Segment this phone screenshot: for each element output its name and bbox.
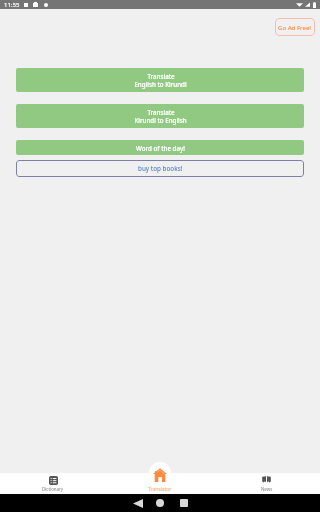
button[interactable]: Translate (16, 104, 304, 128)
staticText: Dictionary (42, 486, 64, 492)
button[interactable]: Word of the day! (16, 140, 304, 155)
staticText: News (261, 486, 273, 492)
button[interactable]: Dictionary (0, 473, 106, 494)
staticText: Go Ad Free! (278, 23, 312, 31)
staticText: 11:55 (4, 1, 20, 9)
staticText: Translator (148, 486, 172, 493)
staticText: English to Kirundi (134, 80, 187, 88)
staticText: Translate (147, 108, 175, 116)
button[interactable]: Translate (16, 68, 304, 92)
staticText: Word of the day! (136, 144, 185, 152)
button[interactable]: buy top books! (16, 160, 304, 177)
button[interactable]: Back (133, 499, 143, 508)
staticText: Translate (147, 72, 175, 80)
button[interactable]: Translator (106, 473, 213, 494)
button[interactable]: Recent apps (180, 499, 188, 507)
button[interactable]: Translator (153, 468, 167, 482)
button[interactable]: Go Ad Free! (275, 18, 315, 36)
staticText: buy top books! (138, 164, 183, 173)
staticText: Kirundi to English (134, 116, 187, 124)
button[interactable]: Home (156, 499, 164, 507)
button[interactable]: News (213, 473, 320, 494)
